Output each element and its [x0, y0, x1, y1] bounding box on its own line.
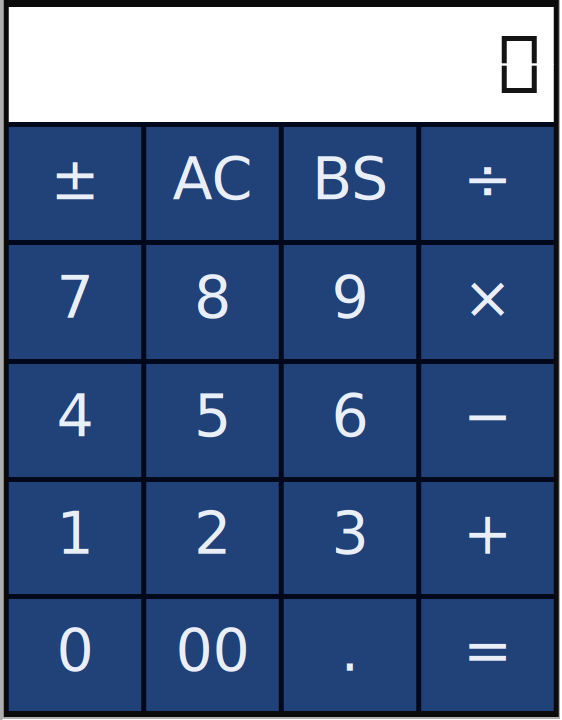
button[interactable]: Four	[9, 364, 141, 477]
staticText: AC	[172, 145, 252, 213]
staticText: 2	[194, 499, 231, 568]
button[interactable]: Divide	[421, 127, 554, 240]
staticText: ÷	[463, 145, 512, 213]
staticText: 4	[56, 382, 93, 450]
button[interactable]: Minus	[421, 364, 554, 477]
button[interactable]: Two	[146, 482, 279, 594]
staticText: .	[340, 616, 359, 685]
staticText: 5	[194, 382, 231, 450]
staticText: 6	[331, 382, 368, 450]
button[interactable]: All clear	[146, 127, 279, 240]
staticText: ×	[463, 263, 512, 332]
button[interactable]: Plus minus	[9, 127, 141, 240]
staticText: 0	[56, 616, 93, 685]
button[interactable]: One	[9, 482, 141, 594]
button[interactable]: Three	[284, 482, 416, 594]
staticText: 7	[56, 263, 93, 332]
button[interactable]: Decimal point	[284, 599, 416, 711]
button[interactable]: Multiply	[421, 245, 554, 359]
staticText: BS	[312, 145, 388, 213]
button[interactable]: Five	[146, 364, 279, 477]
button[interactable]: Double zero	[146, 599, 279, 711]
button[interactable]: Nine	[284, 245, 416, 359]
button[interactable]: Seven	[9, 245, 141, 359]
staticText: =	[463, 616, 512, 685]
button[interactable]: Plus	[421, 482, 554, 594]
button[interactable]: Zero	[9, 599, 141, 711]
staticText: 8	[194, 263, 231, 332]
staticText: 1	[56, 499, 93, 568]
staticText: +	[463, 499, 512, 568]
staticText: 9	[331, 263, 368, 332]
button[interactable]: Eight	[146, 245, 279, 359]
staticText: −	[463, 382, 512, 450]
button[interactable]: Six	[284, 364, 416, 477]
button[interactable]: Backspace	[284, 127, 416, 240]
staticText: ±	[50, 145, 99, 213]
button[interactable]: Equals	[421, 599, 554, 711]
staticText: 3	[331, 499, 368, 568]
staticText: 00	[175, 616, 249, 685]
